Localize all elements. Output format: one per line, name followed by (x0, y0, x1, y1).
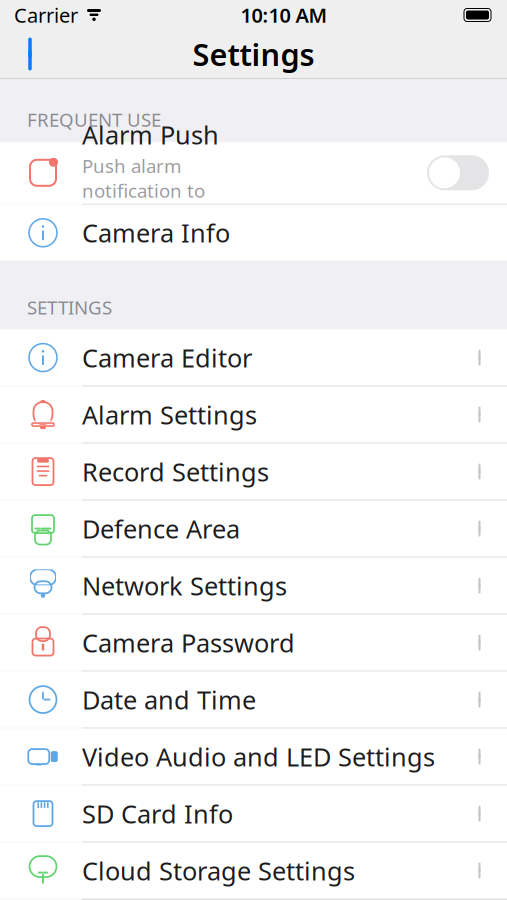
button[interactable]: Video Audio and LED Settings (0, 729, 507, 785)
staticText: Record Settings (82, 455, 269, 488)
staticText: Carrier (14, 2, 78, 28)
staticText: Cloud Storage Settings (82, 854, 355, 887)
staticText: FREQUENT USE (27, 107, 161, 132)
staticText: Camera Info (82, 216, 230, 250)
button[interactable]: Cloud Storage Settings (0, 843, 507, 899)
staticText: Alarm Settings (82, 398, 257, 431)
staticText: Push alarm notification to your phone. (82, 153, 205, 228)
button[interactable]: Defence Area (0, 501, 507, 557)
button[interactable]: Camera Info (0, 205, 507, 261)
staticText: Camera Password (82, 626, 295, 659)
staticText: SETTINGS (27, 295, 112, 320)
staticText: Network Settings (82, 569, 287, 602)
staticText: Alarm Push (82, 118, 219, 151)
staticText: 10:10 AM (240, 2, 327, 28)
button[interactable]: Date and Time (0, 672, 507, 728)
button[interactable]: Alarm Push (0, 142, 507, 204)
staticText: Date and Time (82, 683, 256, 716)
button[interactable]: Record Settings (0, 444, 507, 500)
button[interactable]: Back (8, 32, 52, 76)
button[interactable]: SD Card Info (0, 786, 507, 842)
staticText: Defence Area (82, 512, 240, 545)
staticText: SD Card Info (82, 797, 233, 830)
button[interactable]: Alarm Settings (0, 387, 507, 443)
button[interactable]: Network Settings (0, 558, 507, 614)
button[interactable]: Camera Password (0, 615, 507, 671)
staticText: Camera Editor (82, 341, 252, 374)
button[interactable]: Camera Editor (0, 330, 507, 386)
staticText: Settings (192, 34, 314, 74)
staticText: Video Audio and LED Settings (82, 740, 435, 773)
